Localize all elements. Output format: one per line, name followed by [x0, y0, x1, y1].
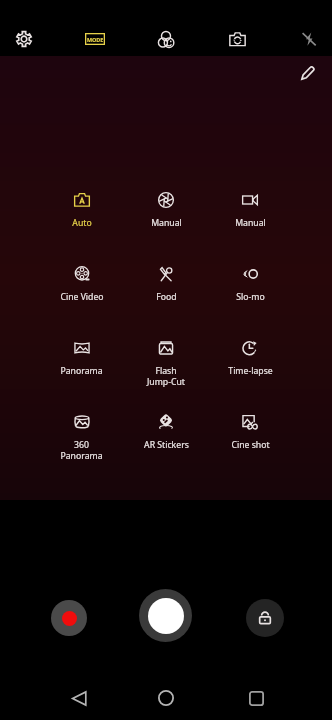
button[interactable]: AR Stickers	[124, 414, 208, 488]
button[interactable]: Switch camera	[214, 22, 261, 56]
button[interactable]: Take photo	[139, 589, 192, 642]
button[interactable]: Flash off	[285, 22, 332, 56]
button[interactable]: 360 Panorama	[39, 414, 124, 488]
button[interactable]: Filters	[143, 22, 190, 56]
button[interactable]: Mode	[77, 22, 113, 56]
staticText: 360 Panorama	[60, 439, 103, 462]
staticText: Cine Video	[60, 291, 104, 303]
staticText: Panorama	[60, 365, 103, 377]
staticText: AR Stickers	[144, 439, 189, 451]
button[interactable]: Cine shot	[208, 414, 292, 488]
button[interactable]: Time-lapse	[208, 340, 292, 414]
button[interactable]: Manual	[124, 192, 208, 266]
button[interactable]: Settings	[0, 22, 47, 56]
button[interactable]: Edit modes	[292, 56, 324, 88]
staticText: Time-lapse	[228, 365, 273, 377]
button[interactable]: Back	[58, 677, 100, 719]
button[interactable]: Lock	[246, 599, 284, 637]
button[interactable]: Record video	[51, 600, 87, 636]
button[interactable]: Recents	[235, 677, 277, 719]
button[interactable]: Home	[145, 677, 187, 719]
button[interactable]: Flash Jump-Cut	[124, 340, 208, 414]
button[interactable]: Food	[124, 266, 208, 340]
staticText: MODE	[87, 36, 104, 43]
staticText: Cine shot	[231, 439, 270, 451]
staticText: Slo-mo	[236, 291, 265, 303]
button[interactable]: Panorama	[39, 340, 124, 414]
staticText: Food	[156, 291, 177, 303]
staticText: Manual	[151, 217, 182, 229]
button[interactable]: Auto	[39, 192, 124, 266]
staticText: Manual	[235, 217, 266, 229]
staticText: Flash Jump-Cut	[147, 365, 185, 388]
button[interactable]: Slo-mo	[208, 266, 292, 340]
button[interactable]: Cine Video	[39, 266, 124, 340]
staticText: Auto	[72, 217, 92, 229]
button[interactable]: Manual	[208, 192, 292, 266]
